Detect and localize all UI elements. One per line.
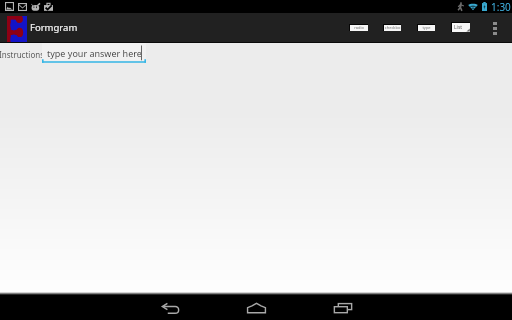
button[interactable]: type here (417, 24, 435, 31)
staticText: List (454, 24, 463, 31)
staticText: type here (418, 25, 435, 31)
button[interactable]: Recents (324, 295, 362, 320)
button[interactable]: Back (152, 295, 190, 320)
button[interactable]: More options (488, 16, 501, 40)
button[interactable]: type your answer here (42, 43, 146, 63)
button[interactable]: radio btns (349, 24, 368, 31)
staticText: type your answer here (47, 47, 142, 59)
staticText: checkbox (384, 25, 401, 31)
staticText: Formgram (30, 21, 78, 34)
button[interactable]: List (451, 22, 470, 32)
staticText: radio btns (350, 25, 368, 31)
button[interactable]: checkbox (383, 24, 401, 31)
button[interactable]: Home (237, 295, 275, 320)
staticText: 1:30 (491, 0, 511, 13)
staticText: Instructions (0, 49, 45, 60)
